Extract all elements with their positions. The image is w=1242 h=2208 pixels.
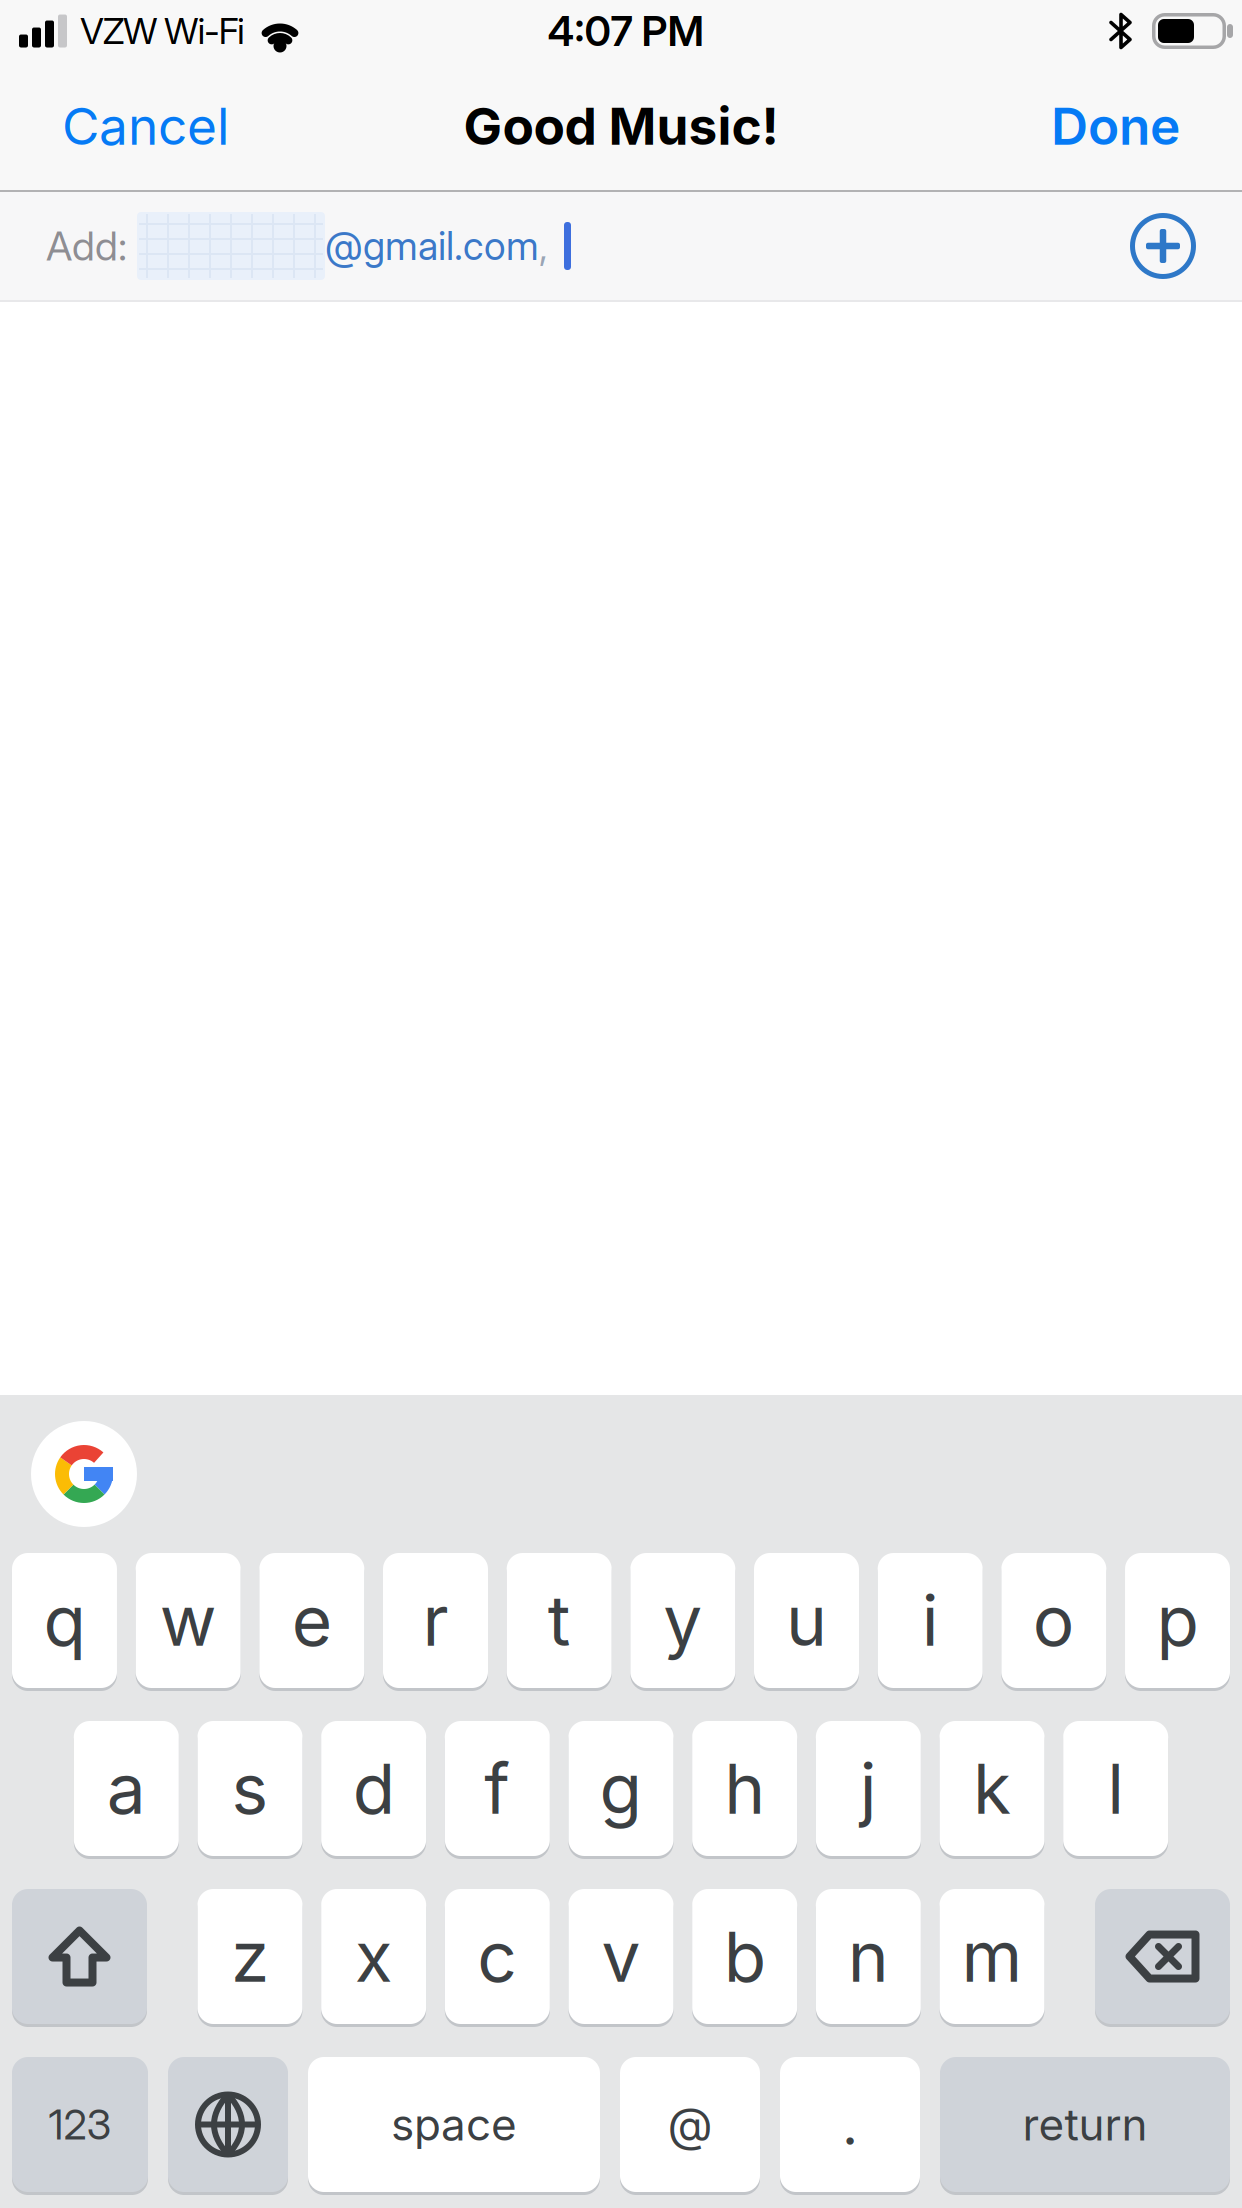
staticText: q (43, 1579, 85, 1662)
staticText: h (724, 1747, 765, 1830)
staticText: t (548, 1579, 571, 1662)
staticText: g (599, 1747, 642, 1830)
staticText: c (477, 1915, 517, 1998)
button[interactable]: n (816, 1889, 921, 2024)
button[interactable]: a (74, 1721, 179, 1856)
button[interactable] (1095, 1889, 1230, 2024)
staticText: . (842, 2091, 858, 2158)
staticText: @ (667, 2096, 712, 2153)
button[interactable]: Cancel (62, 95, 229, 157)
button[interactable]: y (630, 1553, 735, 1688)
staticText: o (1033, 1579, 1075, 1662)
staticText: space (391, 2098, 517, 2151)
button[interactable]: v (568, 1889, 673, 2024)
button[interactable]: . (780, 2057, 920, 2192)
button[interactable]: m (939, 1889, 1044, 2024)
button[interactable] (168, 2057, 288, 2192)
staticText: p (1156, 1579, 1198, 1662)
staticText: e (292, 1579, 332, 1662)
staticText: , (539, 223, 548, 269)
button[interactable]: 123 (12, 2057, 148, 2192)
button[interactable] (1130, 213, 1196, 279)
staticText: z (231, 1915, 269, 1998)
staticText: d (353, 1747, 395, 1830)
button[interactable]: c (445, 1889, 550, 2024)
staticText: f (484, 1747, 510, 1830)
button[interactable]: b (692, 1889, 797, 2024)
staticText: j (860, 1747, 877, 1830)
staticText: k (973, 1747, 1011, 1830)
button[interactable]: d (321, 1721, 426, 1856)
staticText: Done (1051, 95, 1180, 157)
button[interactable]: k (939, 1721, 1044, 1856)
staticText: VZW Wi-Fi (80, 9, 245, 53)
button[interactable]: g (568, 1721, 673, 1856)
button[interactable]: return (940, 2057, 1230, 2192)
staticText: 123 (48, 2099, 111, 2149)
staticText: @gmail.com (325, 223, 539, 269)
button[interactable] (31, 1421, 137, 1527)
button[interactable]: w (136, 1553, 241, 1688)
button[interactable]: o (1001, 1553, 1106, 1688)
button[interactable]: q (12, 1553, 117, 1688)
button[interactable]: t (507, 1553, 612, 1688)
button[interactable]: @ (620, 2057, 760, 2192)
button[interactable]: space (308, 2057, 600, 2192)
button[interactable]: r (383, 1553, 488, 1688)
button[interactable]: h (692, 1721, 797, 1856)
button[interactable]: l (1063, 1721, 1168, 1856)
staticText: n (848, 1915, 889, 1998)
staticText: l (1107, 1747, 1124, 1830)
staticText: Add: (46, 222, 127, 270)
button[interactable]: j (816, 1721, 921, 1856)
button[interactable]: x (321, 1889, 426, 2024)
button[interactable]: p (1125, 1553, 1230, 1688)
staticText: i (922, 1579, 939, 1662)
staticText: b (724, 1915, 766, 1998)
staticText: u (786, 1579, 827, 1662)
staticText: 4:07 PM (547, 6, 704, 56)
staticText: w (160, 1579, 217, 1662)
staticText: Good Music! (463, 95, 778, 157)
staticText: x (355, 1915, 393, 1998)
button[interactable] (12, 1889, 147, 2024)
staticText: r (422, 1579, 448, 1662)
staticText: Cancel (62, 95, 229, 157)
button[interactable]: z (197, 1889, 302, 2024)
staticText: m (961, 1915, 1022, 1998)
staticText: y (663, 1579, 702, 1662)
button[interactable]: s (197, 1721, 302, 1856)
button[interactable]: i (878, 1553, 983, 1688)
button[interactable]: e (259, 1553, 364, 1688)
staticText: return (1022, 2098, 1147, 2151)
staticText: v (601, 1915, 640, 1998)
staticText: s (231, 1747, 268, 1830)
button[interactable]: f (445, 1721, 550, 1856)
button[interactable]: Done (1051, 95, 1180, 157)
staticText: a (107, 1747, 146, 1830)
button[interactable]: u (754, 1553, 859, 1688)
